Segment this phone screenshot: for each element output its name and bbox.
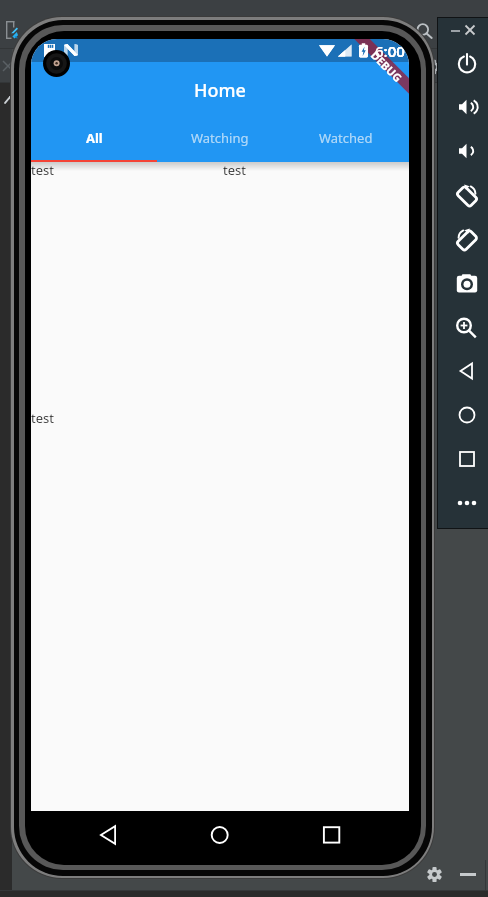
staticText: Watching <box>191 129 249 147</box>
staticText: DEBUG <box>369 48 405 84</box>
staticText: Watched <box>319 129 373 147</box>
staticText: 6:00 <box>375 41 405 61</box>
button[interactable]: Rotate left <box>442 173 488 217</box>
staticText: test <box>223 161 246 179</box>
button[interactable]: Minimize <box>448 23 462 38</box>
staticText: test <box>31 161 54 179</box>
button[interactable]: Zoom <box>442 305 488 349</box>
button[interactable]: Search <box>414 21 434 41</box>
button[interactable]: Watching <box>157 116 283 159</box>
button[interactable]: Volume down <box>442 129 488 173</box>
button[interactable]: Settings <box>426 59 442 75</box>
staticText: test <box>31 409 54 427</box>
button[interactable]: Back <box>96 823 120 847</box>
button[interactable]: Watched <box>283 116 409 159</box>
staticText: 6:00 <box>375 41 405 61</box>
staticText: All <box>86 129 103 147</box>
button[interactable]: Rotate right <box>442 217 488 261</box>
staticText: Home <box>194 78 246 103</box>
button[interactable]: Settings <box>426 866 443 883</box>
button[interactable]: Home <box>442 393 488 437</box>
button[interactable]: Power <box>442 41 488 85</box>
button[interactable]: Close <box>463 23 477 37</box>
button[interactable]: Recents <box>320 823 344 847</box>
button[interactable]: Overview <box>442 437 488 481</box>
button[interactable]: More <box>442 481 488 525</box>
button[interactable]: Screenshot <box>442 261 488 305</box>
button[interactable]: All <box>31 116 157 159</box>
button[interactable]: Close <box>0 58 16 74</box>
button[interactable]: Back <box>442 349 488 393</box>
button[interactable]: Volume up <box>442 85 488 129</box>
button[interactable]: Home <box>208 823 232 847</box>
